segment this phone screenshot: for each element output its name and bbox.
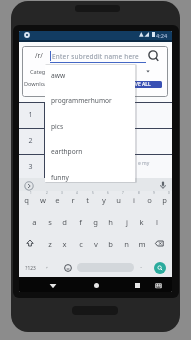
staticText: r [71, 195, 75, 205]
button[interactable]: i [126, 193, 141, 206]
button[interactable]: o [142, 193, 157, 206]
staticText: e my [138, 160, 150, 167]
staticText: , [46, 262, 48, 270]
button[interactable]: a [27, 215, 42, 228]
staticText: m [138, 239, 146, 249]
staticText: b [108, 239, 113, 249]
button[interactable]: SAVE ALL [118, 81, 162, 88]
staticText: /r/ [35, 51, 43, 60]
staticText: d [62, 217, 67, 227]
staticText: 3 [28, 162, 33, 172]
button[interactable] [94, 283, 99, 288]
staticText: Enter subreddit name here [52, 52, 139, 61]
button[interactable]: g [88, 215, 103, 228]
button[interactable]: d [57, 215, 72, 228]
staticText: . [140, 262, 142, 270]
button[interactable] [155, 240, 164, 247]
staticText: aww [51, 71, 66, 80]
staticText: 3 [61, 191, 63, 195]
staticText: j [126, 217, 128, 227]
staticText: Category [30, 68, 54, 76]
staticText: g [93, 217, 98, 227]
staticText: 7 [122, 191, 124, 195]
staticText: n [124, 239, 129, 249]
button[interactable] [77, 263, 134, 272]
button[interactable]: programmerhumor [51, 94, 135, 106]
staticText: earthporn [51, 147, 83, 156]
button[interactable] [49, 283, 57, 289]
staticText: 8 [138, 191, 140, 195]
staticText: a [32, 217, 37, 227]
button[interactable]: r [65, 193, 80, 206]
staticText: k [139, 217, 144, 227]
staticText: f [79, 217, 82, 227]
staticText: ?123 [25, 265, 36, 272]
button[interactable]: s [42, 215, 57, 228]
button[interactable]: earthporn [51, 145, 135, 157]
staticText: Download [24, 80, 51, 88]
button[interactable]: x [57, 237, 72, 250]
staticText: 1 [28, 110, 33, 120]
staticText: 6 [107, 191, 109, 195]
button[interactable]: e [50, 193, 65, 206]
staticText: y [102, 195, 106, 205]
button[interactable] [159, 181, 167, 190]
staticText: 1 [30, 191, 32, 195]
staticText: pics [51, 122, 64, 131]
button[interactable]: ?123 [22, 263, 38, 273]
button[interactable]: q [19, 193, 34, 206]
button[interactable]: p [157, 193, 172, 206]
button[interactable]: v [88, 237, 103, 250]
button[interactable]: t [80, 193, 95, 206]
staticText: p [162, 195, 167, 205]
staticText: s [48, 217, 52, 227]
button[interactable]: y [96, 193, 111, 206]
button[interactable]: j [119, 215, 134, 228]
staticText: 9 [153, 191, 155, 195]
staticText: q [24, 195, 29, 205]
staticText: v [94, 239, 98, 249]
button[interactable] [155, 283, 162, 288]
staticText: l [156, 217, 158, 227]
staticText: e [55, 195, 60, 205]
staticText: i [133, 195, 135, 205]
button[interactable]: k [134, 215, 149, 228]
staticText: o [147, 195, 152, 205]
button[interactable]: u [111, 193, 126, 206]
button[interactable]: , [43, 261, 51, 271]
staticText: h [108, 217, 113, 227]
button[interactable] [24, 181, 34, 191]
button[interactable]: f [73, 215, 88, 228]
staticText: z [48, 239, 52, 249]
button[interactable]: b [103, 237, 118, 250]
button[interactable]: n [119, 237, 134, 250]
button[interactable]: pics [51, 120, 135, 132]
button[interactable]: h [103, 215, 118, 228]
button[interactable]: z [42, 237, 57, 250]
button[interactable]: aww [51, 69, 135, 81]
staticText: c [79, 239, 83, 249]
button[interactable]: . [137, 261, 145, 271]
button[interactable] [148, 50, 159, 62]
staticText: 2 [46, 191, 48, 195]
staticText: 5 [92, 191, 94, 195]
staticText: SAVE ALL [129, 81, 151, 88]
button[interactable]: m [134, 237, 149, 250]
staticText: t [86, 195, 89, 205]
button[interactable]: w [35, 193, 50, 206]
staticText: x [62, 239, 67, 249]
button[interactable] [154, 262, 166, 274]
staticText: 0 [168, 191, 170, 195]
button[interactable]: c [73, 237, 88, 250]
button[interactable]: funny [51, 171, 135, 183]
button[interactable]: l [149, 215, 164, 228]
button[interactable] [26, 239, 34, 247]
staticText: u [116, 195, 121, 205]
staticText: 4:24 [156, 32, 168, 40]
button[interactable] [64, 264, 72, 272]
staticText: 4 [76, 191, 78, 195]
staticText: programmerhumor [51, 96, 112, 105]
staticText: 2 [28, 136, 33, 146]
staticText: funny [51, 173, 69, 182]
